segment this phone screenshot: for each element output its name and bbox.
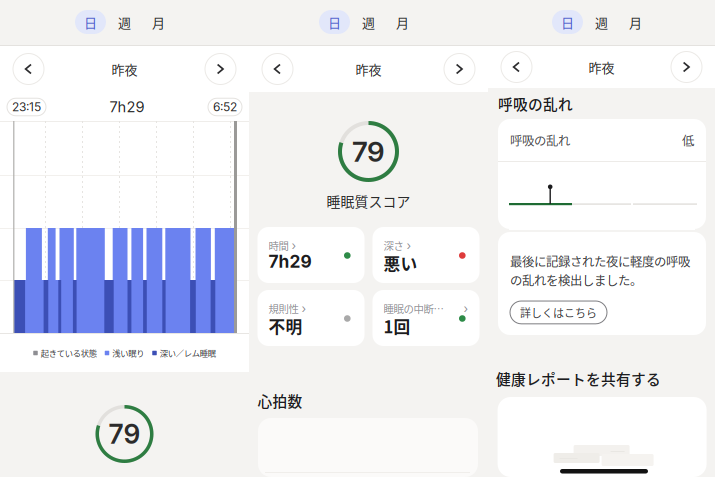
button[interactable]: Previous night [501,51,532,82]
staticText: 健康レポートを共有する [496,368,661,389]
button[interactable]: 日 [75,10,106,34]
staticText: 日 [561,12,574,31]
button[interactable]: 月 [620,10,651,34]
staticText: 不明 [268,314,302,338]
staticText: 呼吸の乱れ [510,131,570,149]
staticText: 月 [152,12,165,31]
button[interactable]: 深さ [372,227,479,283]
button[interactable]: Next night [671,51,702,82]
button[interactable]: Next night [444,53,475,84]
button[interactable]: 睡眠の中断… [372,290,479,346]
staticText: 週 [595,12,608,31]
staticText: 79 [108,418,140,450]
button[interactable]: 日 [552,10,583,34]
staticText: の乱れを検出しました。 [510,271,642,289]
button[interactable]: 月 [387,10,418,34]
staticText: 79 [352,135,385,168]
staticText: 深い／レム睡眠 [160,347,216,359]
button[interactable]: 時間 [257,227,364,283]
staticText: 週 [362,12,375,31]
staticText: › [291,238,296,253]
staticText: 1回 [383,314,410,338]
button[interactable]: 週 [353,10,384,34]
button[interactable]: 規則性 [257,290,364,346]
staticText: 23:15 [12,100,41,114]
staticText: 月 [396,12,409,31]
staticText: 深さ [383,238,403,253]
button[interactable]: 月 [143,10,174,34]
staticText: 詳しくはこちら [520,304,597,320]
button[interactable]: 週 [109,10,140,34]
staticText: › [301,301,306,316]
staticText: 最後に記録された夜に軽度の呼吸 [510,252,690,270]
staticText: 低 [682,131,694,149]
staticText: 7h29 [268,251,311,272]
staticText: 月 [629,12,642,31]
button[interactable]: 週 [586,10,617,34]
staticText: 睡眠質スコア [326,191,410,211]
staticText: 日 [328,12,341,31]
staticText: 6:52 [213,100,237,114]
button[interactable]: Previous night [262,53,293,84]
button[interactable]: 日 [319,10,350,34]
button[interactable]: Previous night [13,53,44,84]
button[interactable]: Next night [205,53,236,84]
staticText: 週 [118,12,131,31]
staticText: 呼吸の乱れ [498,93,573,114]
staticText: 浅い眠り [112,347,144,359]
staticText: 7h29 [109,98,144,116]
staticText: 規則性 [268,301,298,316]
button[interactable]: 詳しくはこちら [510,301,607,324]
staticText: › [406,238,411,253]
staticText: 心拍数 [257,390,302,411]
staticText: 悪い [383,251,417,275]
staticText: 昨夜 [588,57,614,76]
staticText: › [463,301,468,316]
staticText: 昨夜 [111,59,137,78]
staticText: 昨夜 [355,59,381,78]
staticText: 睡眠の中断… [383,301,443,316]
staticText: 日 [84,12,97,31]
staticText: 起きている状態 [41,347,97,359]
staticText: 時間 [268,238,288,253]
